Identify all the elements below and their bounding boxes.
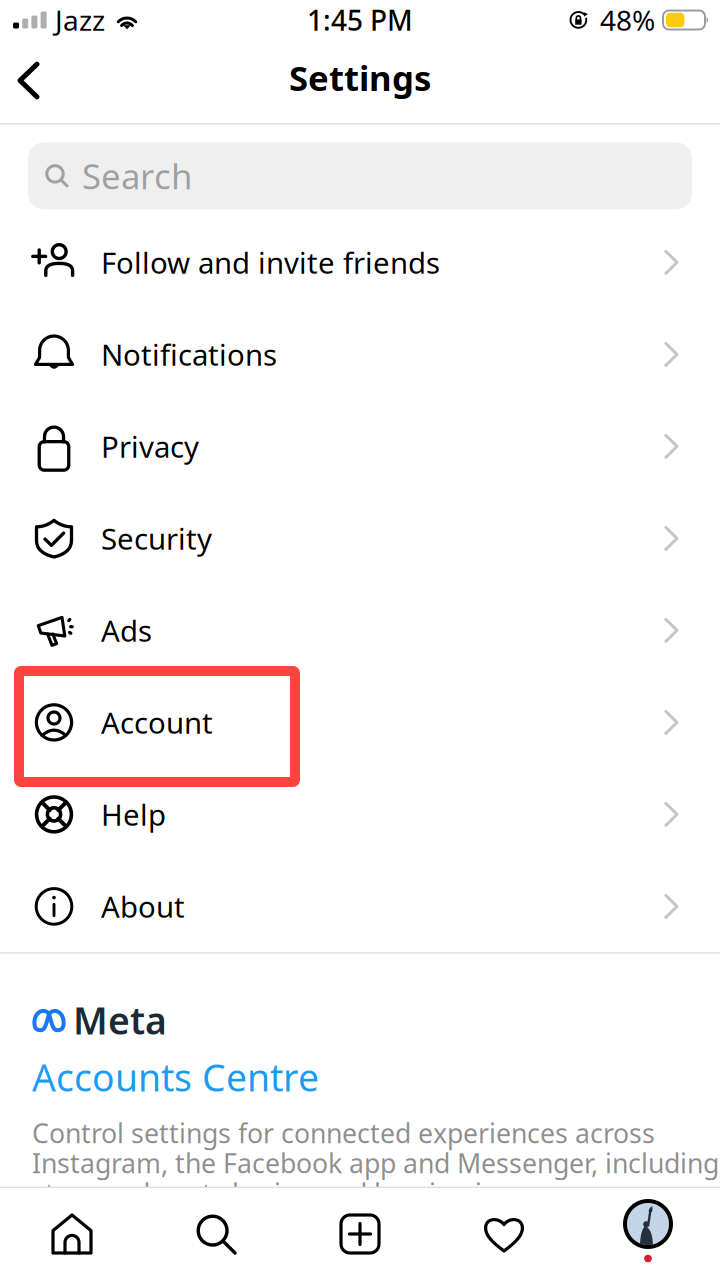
button[interactable]: Ads	[0, 584, 720, 676]
button[interactable]: Search	[144, 1213, 288, 1255]
button[interactable]: Notifications	[0, 308, 720, 400]
button[interactable]: Home	[0, 1213, 144, 1255]
staticText: Search	[82, 153, 192, 199]
staticText: Settings	[289, 54, 431, 100]
staticText: Accounts Centre	[32, 1052, 319, 1102]
staticText: Notifications	[101, 335, 277, 374]
staticText: Security	[101, 519, 212, 558]
button[interactable]: Security	[0, 492, 720, 584]
staticText: Instagram, the Facebook app and Messenge…	[32, 1145, 719, 1181]
staticText: Jazz	[55, 1, 105, 39]
staticText: Privacy	[101, 427, 199, 466]
button[interactable]: Accounts Centre	[32, 1055, 352, 1099]
staticText: story and post sharing and logging in.	[32, 1175, 505, 1211]
button[interactable]: Create	[288, 1213, 432, 1255]
button[interactable]: Help	[0, 768, 720, 860]
staticText: Follow and invite friends	[101, 243, 440, 282]
staticText: Meta	[73, 995, 167, 1045]
staticText: About	[101, 887, 185, 926]
staticText: 1:45 PM	[307, 1, 413, 39]
button[interactable]: Activity	[432, 1213, 576, 1255]
button[interactable]: Back	[0, 49, 58, 113]
staticText: Control settings for connected experienc…	[32, 1115, 655, 1151]
staticText: 48%	[600, 1, 655, 39]
button[interactable]: Follow and invite friends	[0, 216, 720, 308]
button[interactable]: Profile	[576, 1198, 720, 1270]
button[interactable]: Privacy	[0, 400, 720, 492]
button[interactable]: Account	[0, 676, 720, 768]
staticText: Account	[101, 703, 213, 742]
staticText: Ads	[101, 611, 152, 650]
staticText: Help	[101, 795, 166, 834]
button[interactable]: About	[0, 860, 720, 952]
